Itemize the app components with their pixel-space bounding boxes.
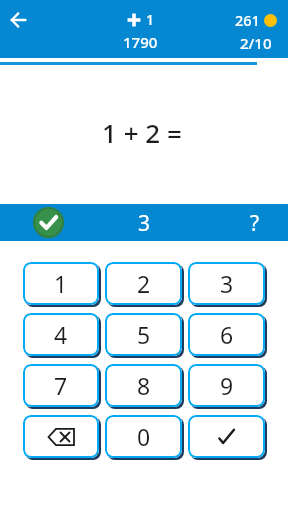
button[interactable]: 5 <box>105 313 182 356</box>
button[interactable]: 8 <box>105 364 182 407</box>
button[interactable]: 7 <box>23 364 99 407</box>
button[interactable]: 6 <box>188 313 265 356</box>
staticText: 9 <box>220 370 234 401</box>
staticText: 1 <box>54 268 68 299</box>
button[interactable] <box>33 207 64 238</box>
staticText: 7 <box>54 370 68 401</box>
button[interactable] <box>0 0 40 40</box>
staticText: 261 <box>235 10 260 30</box>
button[interactable]: 9 <box>188 364 265 407</box>
staticText: 1 <box>146 10 155 29</box>
button[interactable]: 1 <box>23 262 99 305</box>
staticText: 8 <box>137 370 151 401</box>
button[interactable] <box>23 415 99 458</box>
button[interactable]: 0 <box>105 415 182 458</box>
button[interactable]: ? <box>250 209 260 238</box>
staticText: 1 + 2 = <box>102 115 182 150</box>
button[interactable]: 3 <box>188 262 265 305</box>
staticText: 3 <box>220 268 234 299</box>
staticText: 2 <box>137 268 151 299</box>
button[interactable] <box>188 415 265 458</box>
staticText: 1790 <box>123 32 158 52</box>
staticText: 5 <box>137 319 151 350</box>
staticText: 3 <box>138 209 151 238</box>
staticText: 6 <box>220 319 234 350</box>
button[interactable]: 4 <box>23 313 99 356</box>
staticText: 4 <box>54 319 68 350</box>
staticText: 0 <box>137 421 151 452</box>
button[interactable]: 2 <box>105 262 182 305</box>
staticText: 2/10 <box>240 33 272 53</box>
